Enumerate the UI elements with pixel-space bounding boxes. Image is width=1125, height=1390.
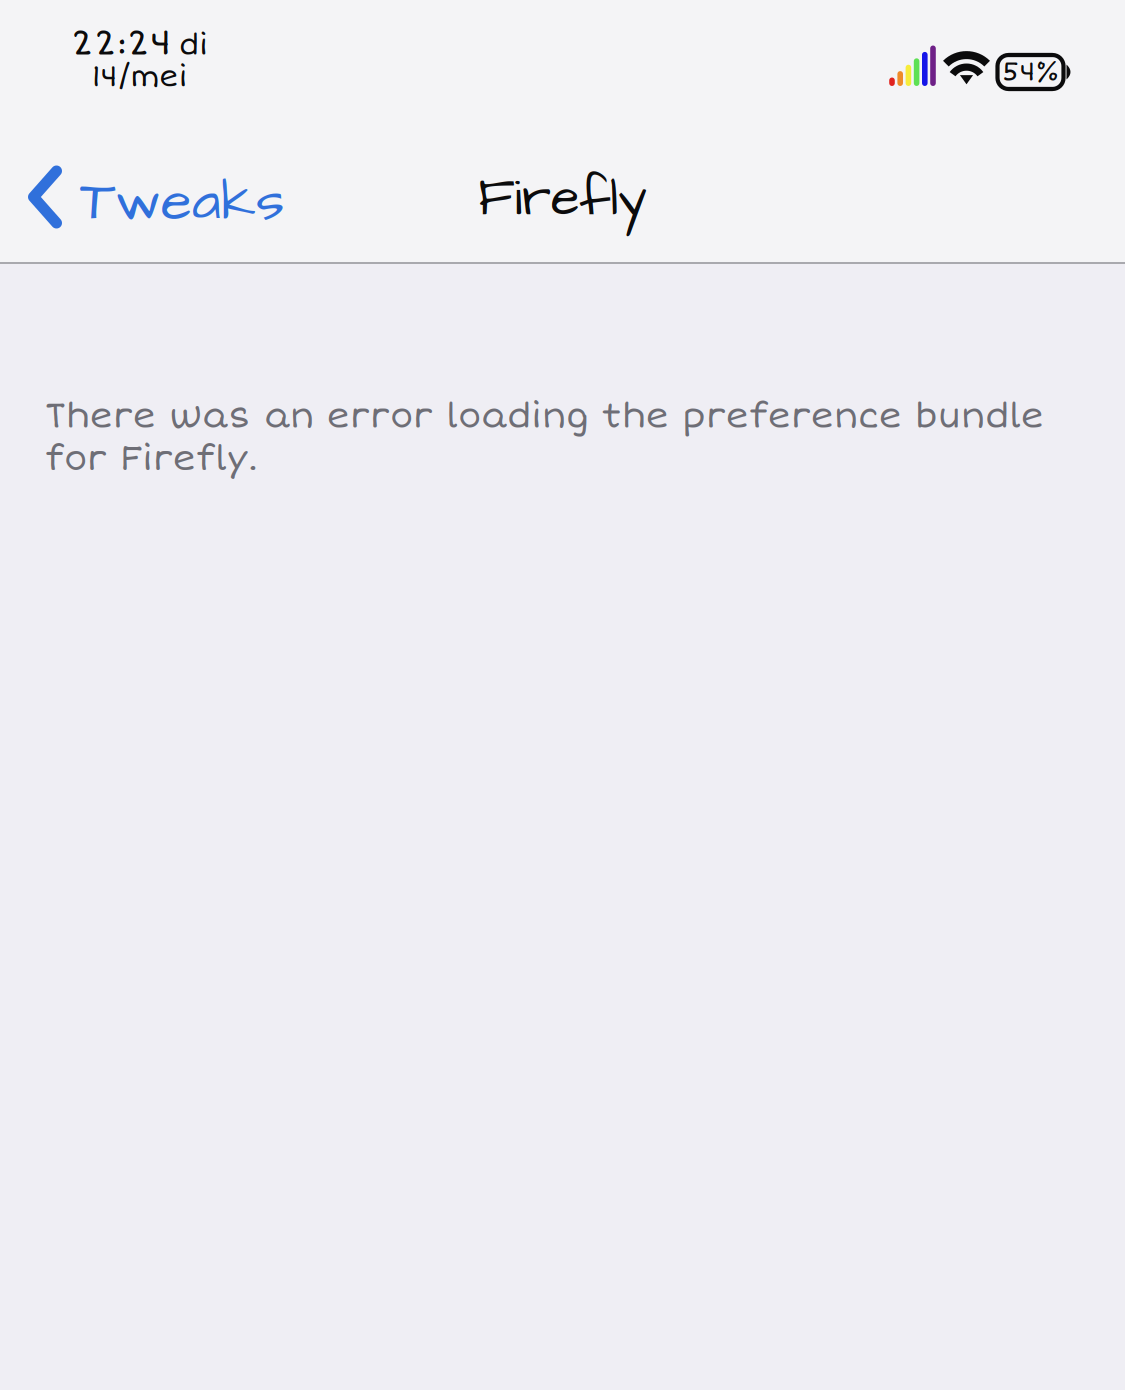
staticText: Firefly [478,162,647,236]
staticText: 22:24 [71,21,172,65]
button[interactable]: Tweaks [0,121,300,263]
staticText: 54% [1001,56,1059,88]
staticText: di [179,28,208,63]
staticText: 14/mei [91,59,187,95]
staticText: There was an error loading the preferenc… [45,395,1044,480]
staticText: Tweaks [80,163,284,241]
